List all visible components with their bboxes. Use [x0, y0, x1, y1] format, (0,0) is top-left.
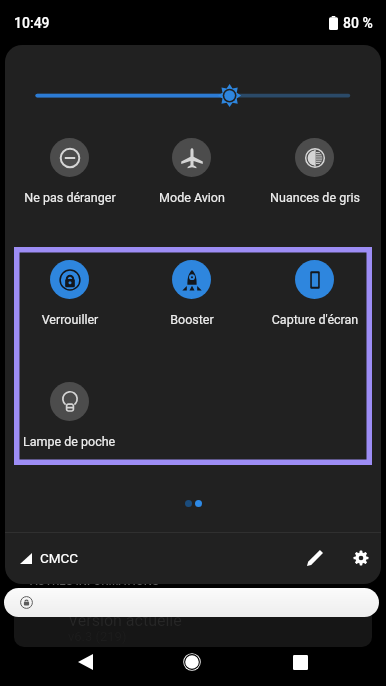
button[interactable]: Lampe de poche — [9, 376, 131, 450]
staticText: Lampe de poche — [23, 434, 116, 449]
staticText: Version actuelle — [68, 611, 182, 630]
staticText: 80 % — [343, 15, 373, 31]
staticText: CMCC — [40, 550, 79, 566]
button[interactable] — [4, 588, 379, 617]
staticText: Capture d'écran — [254, 312, 376, 327]
button[interactable]: Recent apps — [279, 643, 321, 682]
button[interactable]: Mode Avion — [131, 132, 253, 206]
staticText: AUTRES INFORMATIONS — [30, 574, 159, 587]
button[interactable]: Verrouiller — [9, 254, 131, 328]
staticText: Verrouiller — [9, 312, 131, 327]
button[interactable]: Home — [171, 642, 213, 681]
button[interactable]: Booster — [131, 254, 253, 328]
button[interactable]: Edit tiles — [299, 542, 331, 574]
staticText: Mode Avion — [131, 190, 253, 205]
button[interactable]: Capture d'écran — [254, 254, 376, 328]
staticText: Nuances de gris — [254, 190, 376, 205]
button[interactable]: Nuances de gris — [254, 132, 376, 206]
button[interactable]: Ne pas déranger — [9, 132, 131, 206]
staticText: Booster — [131, 312, 253, 327]
button[interactable]: Settings — [345, 542, 377, 574]
button[interactable]: Back — [64, 642, 106, 681]
staticText: 10:49 — [14, 15, 50, 31]
staticText: Ne pas déranger — [9, 190, 131, 205]
